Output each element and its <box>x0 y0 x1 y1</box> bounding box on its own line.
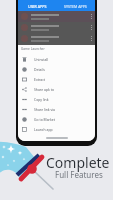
button[interactable]: Go to Market <box>18 114 95 124</box>
staticText: Launch app <box>34 127 53 132</box>
button[interactable]: More options <box>87 22 95 33</box>
staticText: Complete <box>46 153 110 172</box>
staticText: Go to Market <box>34 117 55 122</box>
staticText: SYSTEM APPS <box>64 4 87 9</box>
staticText: Full Features <box>55 169 103 180</box>
button[interactable]: More options <box>87 33 95 44</box>
button[interactable]: More options <box>18 11 95 22</box>
button[interactable]: Share link via <box>18 104 95 114</box>
staticText: Share apk to <box>34 87 54 92</box>
staticText: Details <box>34 67 45 72</box>
staticText: Share link via <box>34 107 56 112</box>
staticText: Extract <box>34 77 45 82</box>
button[interactable]: USER APPS <box>18 2 56 11</box>
button[interactable]: More options <box>18 33 95 44</box>
button[interactable]: Share apk to <box>18 84 95 94</box>
button[interactable]: Extract <box>18 74 95 84</box>
staticText: Copy link <box>34 97 49 102</box>
staticText: USER APPS <box>28 4 47 9</box>
button[interactable]: Copy link <box>18 94 95 104</box>
staticText: Game Launcher <box>21 47 45 51</box>
staticText: Uninstall <box>34 57 49 62</box>
button[interactable]: More options <box>18 22 95 33</box>
button[interactable]: SYSTEM APPS <box>56 2 95 11</box>
button[interactable]: More options <box>87 11 95 22</box>
button[interactable]: Launch app <box>18 124 95 134</box>
button[interactable]: Uninstall <box>18 54 95 64</box>
button[interactable]: Details <box>18 64 95 74</box>
